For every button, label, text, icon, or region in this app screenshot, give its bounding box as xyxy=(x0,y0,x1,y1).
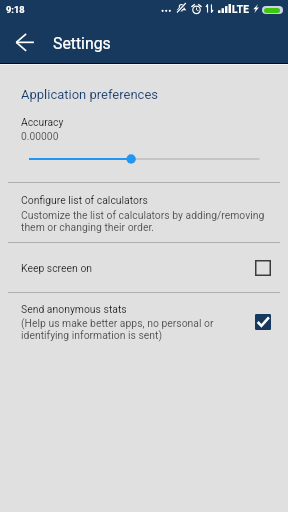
staticText: Send anonymous stats xyxy=(21,303,127,315)
staticText: Keep screen on xyxy=(21,262,93,274)
button[interactable]: Accuracy slider xyxy=(0,149,288,169)
staticText: (Help us make better apps, no personal o… xyxy=(21,317,221,341)
button[interactable]: Configure list of calculators xyxy=(0,183,288,242)
staticText: Configure list of calculators xyxy=(21,194,148,206)
button[interactable]: Accuracy xyxy=(0,108,288,170)
button[interactable]: Checked checkbox xyxy=(253,312,273,332)
staticText: LTE xyxy=(232,4,250,16)
staticText: Application preferences xyxy=(21,87,159,102)
button[interactable]: Keep screen on xyxy=(0,243,288,291)
staticText: Settings xyxy=(53,34,111,53)
button[interactable]: Unchecked checkbox xyxy=(253,258,273,278)
staticText: Customize the list of calculators by add… xyxy=(21,209,269,234)
staticText: Accuracy xyxy=(21,116,64,128)
staticText: 0.00000 xyxy=(21,130,59,142)
button[interactable]: Back xyxy=(9,26,41,58)
staticText: 9:18 xyxy=(6,4,25,15)
button[interactable]: Send anonymous stats xyxy=(0,292,288,348)
